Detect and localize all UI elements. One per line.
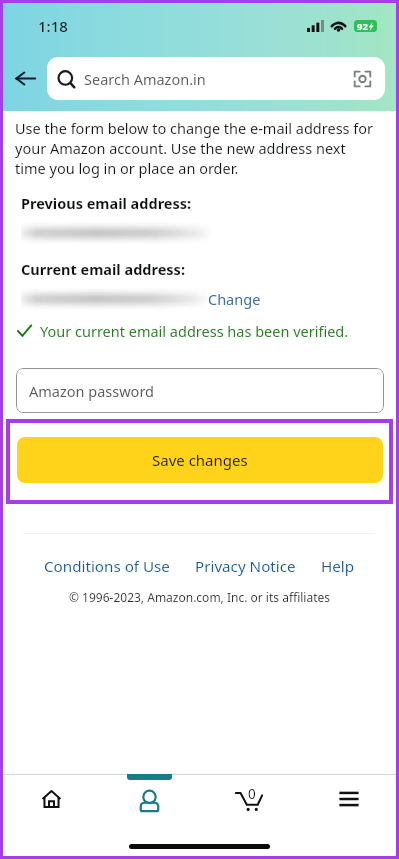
staticText: © 1996-2023, Amazon.com, Inc. or its aff…	[0, 589, 399, 605]
button[interactable]: Menu	[299, 775, 399, 827]
staticText: 1:18	[38, 16, 68, 36]
button[interactable]: Save changes	[17, 437, 383, 483]
staticText: Previous email address:	[21, 193, 192, 213]
button[interactable]: Privacy Notice	[195, 556, 296, 577]
staticText: Use the form below to change the e-mail …	[15, 118, 374, 178]
staticText: Current email address:	[21, 259, 185, 279]
button[interactable]: Cart	[199, 775, 299, 827]
staticText: Search Amazon.in	[84, 69, 206, 89]
button[interactable]: Conditions of Use	[44, 556, 170, 577]
staticText: Amazon password	[29, 381, 155, 401]
button[interactable]: Account	[99, 775, 199, 827]
staticText: Your current email address has been veri…	[40, 321, 349, 341]
button[interactable]: Help	[321, 556, 355, 577]
button[interactable]: Home	[0, 775, 99, 827]
staticText: Save changes	[152, 450, 248, 470]
button[interactable]: Change	[208, 289, 261, 309]
button[interactable]: Amazon password	[16, 368, 384, 413]
staticText: 0	[248, 785, 256, 803]
button[interactable]: Search Amazon.in	[47, 57, 385, 100]
staticText: 92	[357, 20, 368, 32]
button[interactable]: Back	[5, 58, 45, 98]
